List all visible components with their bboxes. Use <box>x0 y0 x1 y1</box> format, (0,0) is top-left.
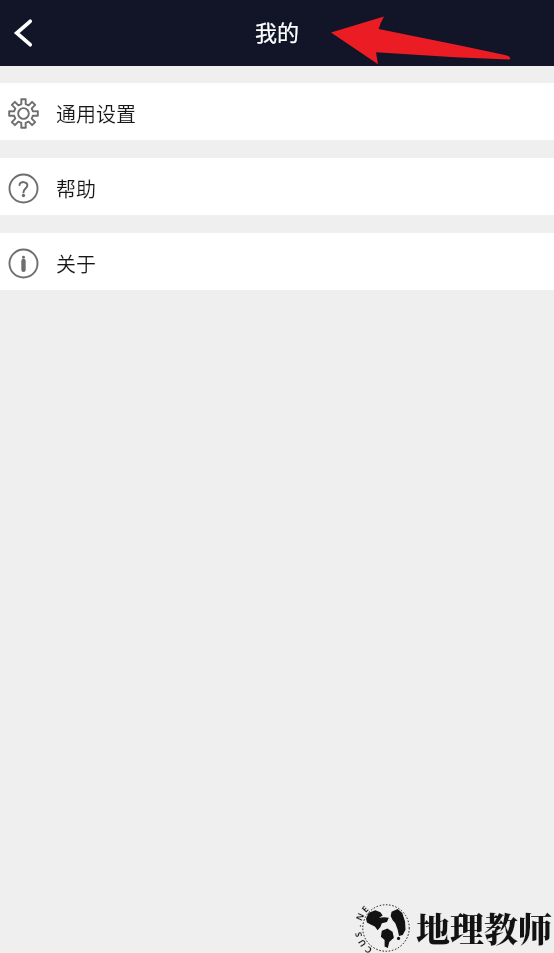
button[interactable]: 通用设置 <box>0 83 554 140</box>
button[interactable]: Back <box>0 10 46 56</box>
button[interactable]: 关于 <box>0 233 554 290</box>
button[interactable]: 帮助 <box>0 158 554 215</box>
staticText: 我的 <box>255 15 300 47</box>
staticText: 通用设置 <box>56 99 136 128</box>
staticText: 地理教师 <box>416 903 552 952</box>
staticText: 帮助 <box>56 174 96 203</box>
staticText: 关于 <box>56 249 96 278</box>
